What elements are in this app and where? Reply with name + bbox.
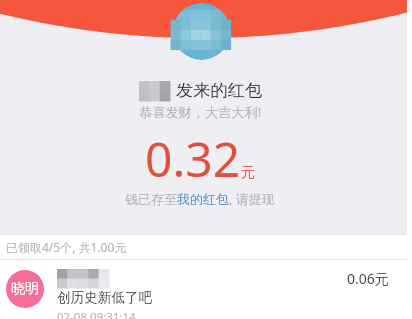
- button[interactable]: 晓明: [0, 260, 407, 319]
- staticText: 元: [241, 164, 255, 182]
- staticText: 0.06元: [347, 269, 389, 288]
- staticText: 晓明: [11, 280, 39, 298]
- staticText: 02-08 09:31:14: [57, 309, 136, 319]
- staticText: 发来的红包: [176, 79, 262, 101]
- staticText: 0.32: [145, 126, 241, 191]
- button[interactable]: 钱已存至我的红包, 请提现: [125, 190, 275, 208]
- staticText: 恭喜发财，大吉大利!: [139, 103, 262, 121]
- staticText: 已领取4/5个, 共1.00元: [6, 239, 127, 255]
- staticText: 创历史新低了吧: [57, 289, 153, 306]
